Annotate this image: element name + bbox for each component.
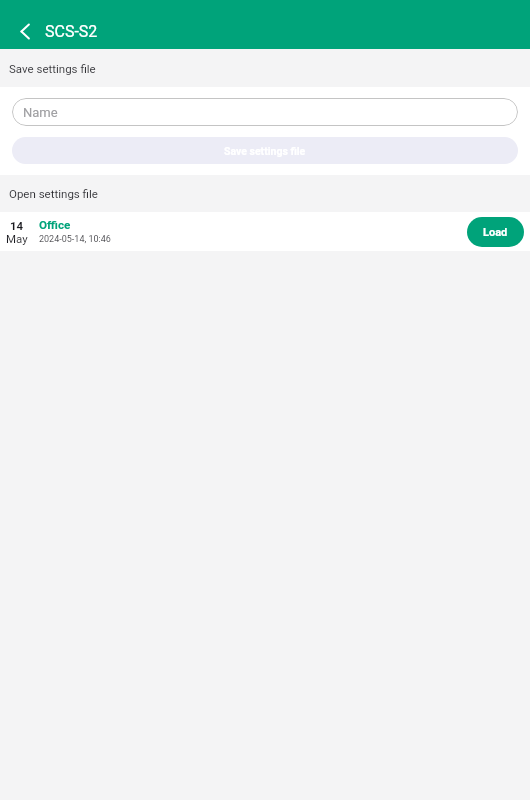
staticText: Save settings file — [9, 62, 96, 75]
staticText: Open settings file — [9, 187, 98, 200]
button[interactable]: Load — [467, 217, 524, 247]
staticText: 2024-05-14, 10:46 — [39, 234, 111, 245]
staticText: 14 — [10, 219, 24, 232]
staticText: Save settings file — [224, 145, 306, 157]
button[interactable]: Name — [12, 98, 518, 126]
button[interactable]: Back — [0, 12, 44, 49]
button[interactable]: 14 — [0, 212, 530, 251]
staticText: Office — [39, 218, 71, 232]
staticText: Name — [23, 105, 58, 120]
button[interactable]: Save settings file — [12, 137, 518, 164]
staticText: SCS-S2 — [45, 22, 98, 41]
staticText: May — [6, 232, 28, 245]
staticText: Load — [483, 226, 508, 239]
